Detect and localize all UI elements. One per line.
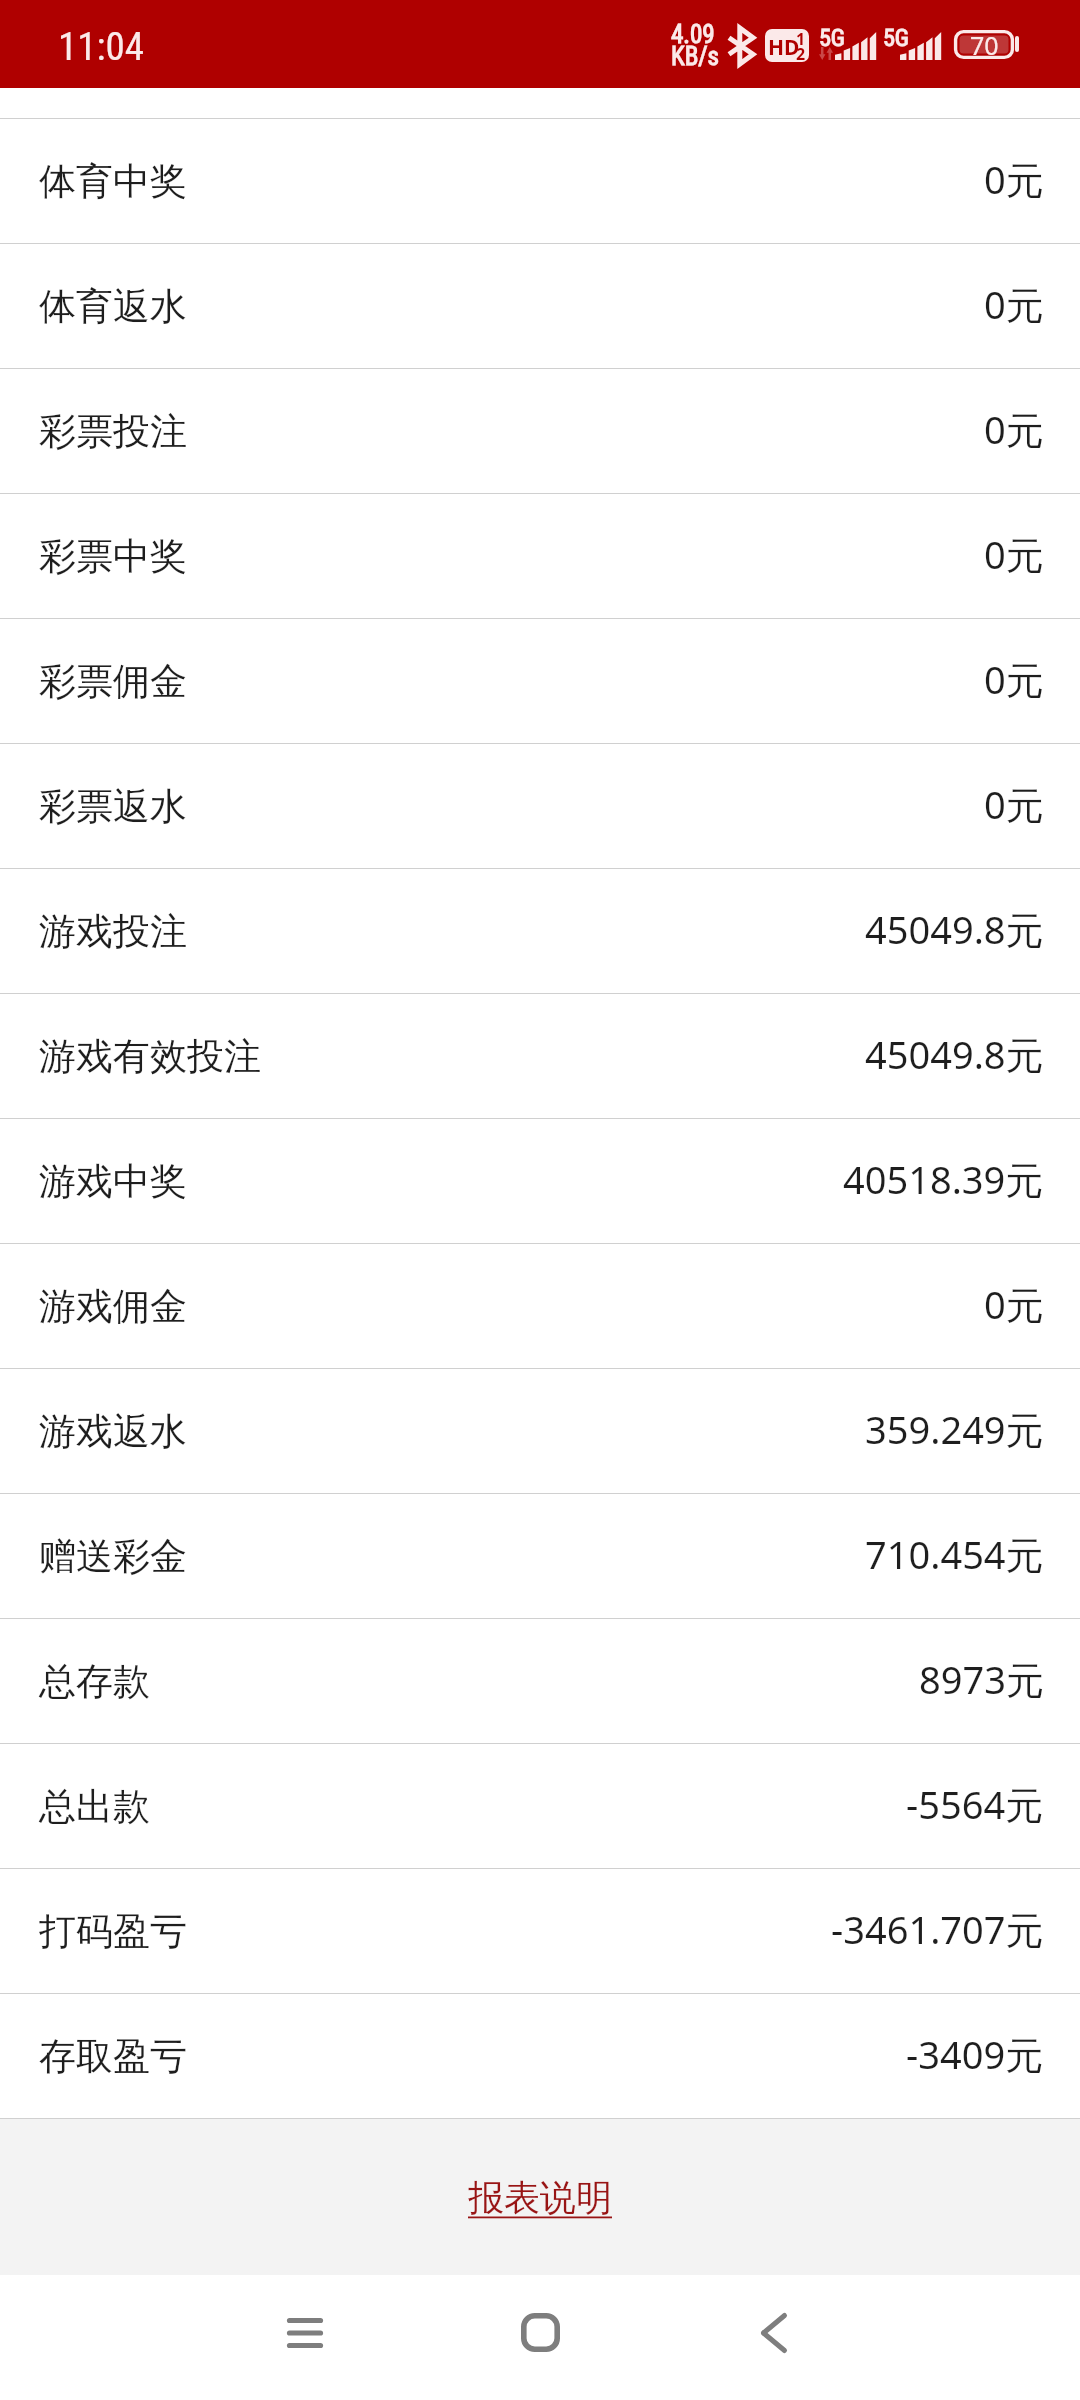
button[interactable]: 彩票投注	[0, 369, 1080, 493]
button[interactable]: 彩票中奖	[0, 494, 1080, 618]
staticText: 游戏返水	[39, 1408, 187, 1455]
staticText: 彩票投注	[39, 408, 187, 455]
staticText: 1	[796, 28, 806, 50]
staticText: 11:04	[58, 24, 145, 70]
button[interactable]: Home	[450, 2275, 630, 2400]
staticText: 存取盈亏	[39, 2033, 187, 2080]
staticText: 45049.8元	[865, 903, 1044, 955]
button[interactable]: 游戏佣金	[0, 1244, 1080, 1368]
button[interactable]: Recent apps	[215, 2275, 395, 2400]
button[interactable]: 彩票佣金	[0, 619, 1080, 743]
button[interactable]: 总出款	[0, 1744, 1080, 1868]
staticText: 5G	[819, 24, 846, 52]
staticText: 70	[970, 28, 999, 57]
button[interactable]: 体育返水	[0, 244, 1080, 368]
button[interactable]: 游戏投注	[0, 869, 1080, 993]
staticText: 游戏佣金	[39, 1283, 187, 1330]
staticText: -3461.707元	[831, 1903, 1044, 1955]
staticText: 8973元	[919, 1653, 1044, 1705]
button[interactable]: 游戏中奖	[0, 1119, 1080, 1243]
button[interactable]: 体育中奖	[0, 119, 1080, 243]
staticText: 710.454元	[865, 1528, 1044, 1580]
staticText: 359.249元	[865, 1403, 1044, 1455]
button[interactable]: 赠送彩金	[0, 1494, 1080, 1618]
staticText: 彩票中奖	[39, 533, 187, 580]
staticText: 体育中奖	[39, 158, 187, 205]
staticText: 打码盈亏	[39, 1908, 187, 1955]
staticText: 4.09	[671, 20, 715, 49]
staticText: 游戏中奖	[39, 1158, 187, 1205]
staticText: 0元	[984, 1278, 1044, 1330]
button[interactable]: Back	[685, 2275, 865, 2400]
button[interactable]: 游戏有效投注	[0, 994, 1080, 1118]
staticText: 报表说明	[468, 2175, 612, 2220]
staticText: 赠送彩金	[39, 1533, 187, 1580]
staticText: -3409元	[906, 2028, 1044, 2080]
staticText: 0元	[984, 778, 1044, 830]
staticText: 体育返水	[39, 283, 187, 330]
staticText: 5G	[883, 24, 910, 52]
staticText: 0元	[984, 653, 1044, 705]
staticText: 游戏有效投注	[39, 1033, 261, 1080]
button[interactable]: 游戏返水	[0, 1369, 1080, 1493]
button[interactable]: 总存款	[0, 1619, 1080, 1743]
staticText: -5564元	[906, 1778, 1044, 1830]
staticText: 0元	[984, 278, 1044, 330]
staticText: 游戏投注	[39, 908, 187, 955]
button[interactable]: 存取盈亏	[0, 1994, 1080, 2118]
button[interactable]: 彩票返水	[0, 744, 1080, 868]
button[interactable]: 打码盈亏	[0, 1869, 1080, 1993]
staticText: 总存款	[39, 1658, 150, 1705]
staticText: 45049.8元	[865, 1028, 1044, 1080]
staticText: 0元	[984, 528, 1044, 580]
staticText: 彩票返水	[39, 783, 187, 830]
staticText: 2	[796, 43, 806, 65]
button[interactable]: 报表说明	[468, 2175, 612, 2220]
staticText: 彩票佣金	[39, 658, 187, 705]
staticText: 0元	[984, 153, 1044, 205]
staticText: HD	[768, 33, 800, 62]
staticText: 总出款	[39, 1783, 150, 1830]
staticText: 40518.39元	[843, 1153, 1044, 1205]
staticText: 0元	[984, 403, 1044, 455]
staticText: KB/s	[671, 42, 719, 71]
